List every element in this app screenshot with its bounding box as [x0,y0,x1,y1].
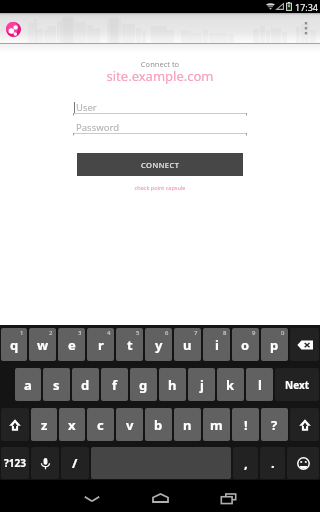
staticText: w [37,336,49,354]
staticText: 17:34 [295,1,319,13]
staticText: 9 [252,329,256,337]
button[interactable]: j [188,368,215,401]
button[interactable]: z [31,408,57,441]
staticText: d [81,376,90,394]
staticText: s [53,376,60,394]
button[interactable]: s [43,368,70,401]
button[interactable]: u [174,328,201,361]
button[interactable]: a [15,368,41,401]
staticText: 3 [78,329,82,337]
button[interactable]: d [72,368,99,401]
button[interactable]: More options [298,13,320,43]
button[interactable]: o [232,328,259,361]
staticText: CONNECT [141,160,180,170]
button[interactable]: Next [275,368,319,401]
button[interactable]: n [174,408,201,441]
staticText: 1 [20,329,24,337]
staticText: c [97,416,104,434]
button[interactable]: . [260,447,285,479]
button[interactable]: check point capsule [0,184,320,191]
button[interactable]: p [261,328,288,361]
button[interactable]: g [130,368,157,401]
button[interactable]: m [203,408,230,441]
button[interactable]: e [58,328,85,361]
button[interactable]: User [73,101,247,116]
staticText: / [72,454,78,472]
staticText: . [271,454,275,472]
button[interactable]: b [145,408,172,441]
staticText: u [183,336,192,354]
button[interactable]: l [246,368,273,401]
staticText: n [183,416,192,434]
button[interactable]: r [87,328,114,361]
staticText: ! [244,416,248,434]
button[interactable]: Voice input [31,447,59,479]
staticText: j [200,376,204,394]
button[interactable]: / [61,447,89,479]
staticText: h [168,376,177,394]
button[interactable]: w [29,328,56,361]
staticText: t [127,336,133,354]
staticText: 2 [49,329,53,337]
button[interactable]: f [101,368,128,401]
staticText: site.example.com [0,67,320,85]
button[interactable]: q [1,328,27,361]
staticText: 5 [136,329,140,337]
staticText: m [210,416,223,434]
staticText: i [215,336,219,354]
staticText: l [258,376,262,394]
staticText: Connect to [0,59,320,69]
button[interactable]: Symbols [1,447,29,479]
staticText: e [68,336,76,354]
button[interactable]: ? [261,408,288,441]
staticText: Next [285,378,310,392]
button[interactable]: Home [136,480,184,512]
staticText: r [98,336,104,354]
button[interactable]: Emoji [287,447,319,479]
staticText: 0 [281,329,285,337]
other: App logo [6,22,21,37]
staticText: z [41,416,48,434]
staticText: q [10,336,19,354]
button[interactable]: v [116,408,143,441]
staticText: ?123 [4,456,26,470]
staticText: b [154,416,163,434]
button[interactable]: Shift [290,408,319,441]
staticText: k [226,376,235,394]
button[interactable]: , [233,447,258,479]
button[interactable]: i [203,328,230,361]
staticText: o [241,336,250,354]
staticText: a [24,376,32,394]
button[interactable]: Shift [1,408,29,441]
button[interactable]: c [87,408,114,441]
button[interactable]: Hide keyboard [68,480,116,512]
button[interactable]: x [59,408,85,441]
button[interactable]: y [145,328,172,361]
button[interactable]: t [116,328,143,361]
staticText: g [139,376,148,394]
staticText: , [244,454,248,472]
staticText: Password [76,121,119,133]
button[interactable]: ! [232,408,259,441]
staticText: ? [271,416,278,434]
staticText: 7 [194,329,198,337]
staticText: x [68,416,76,434]
staticText: User [76,101,97,113]
button[interactable]: h [159,368,186,401]
staticText: p [270,336,279,354]
staticText: 8 [223,329,227,337]
button[interactable]: CONNECT [77,153,243,176]
button[interactable]: k [217,368,244,401]
staticText: 6 [165,329,169,337]
staticText: f [112,376,118,394]
staticText: y [155,336,163,354]
button[interactable]: Recent apps [204,480,252,512]
button[interactable]: Delete [290,328,319,361]
button[interactable]: Password [73,121,247,136]
staticText: 4 [107,329,111,337]
staticText: v [126,416,134,434]
